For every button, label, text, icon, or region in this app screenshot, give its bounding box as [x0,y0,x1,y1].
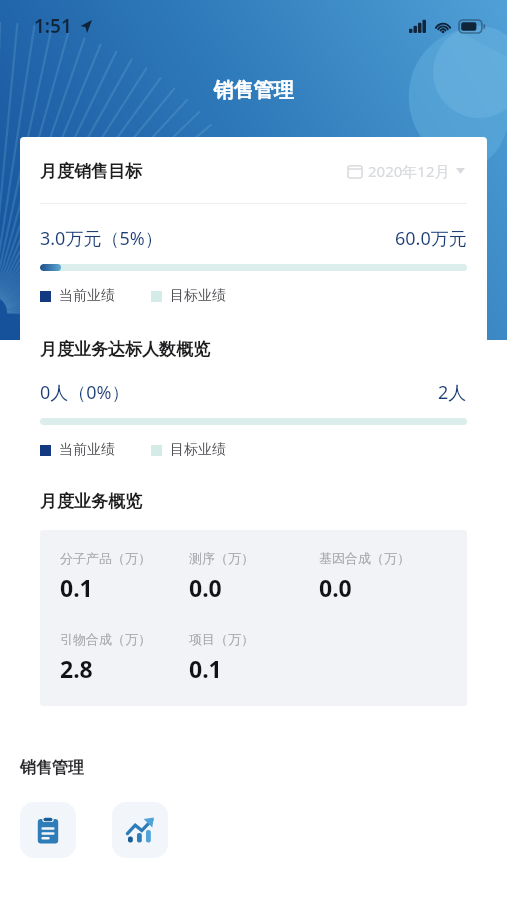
button[interactable]: 销售统计 [112,802,168,858]
staticText: 引物合成（万） [60,631,151,647]
staticText: 3.0万元（5%） [40,226,163,251]
staticText: 0.0 [319,572,352,603]
button[interactable]: 销售订单 [20,802,76,858]
staticText: 2人 [438,380,467,405]
staticText: 0.0 [189,572,222,603]
staticText: 当前业绩 [59,287,115,305]
staticText: 销售管理 [20,758,84,778]
staticText: 目标业绩 [170,441,226,459]
staticText: 0.1 [60,572,93,603]
staticText: 1:51 [34,13,72,39]
staticText: 月度业务概览 [40,491,142,512]
staticText: 分子产品（万） [60,550,151,566]
staticText: 基因合成（万） [319,550,410,566]
staticText: 月度业务达标人数概览 [40,339,210,360]
staticText: 60.0万元 [395,226,467,251]
button[interactable]: 2020年12月 [346,157,467,185]
staticText: 销售管理 [0,78,507,103]
staticText: 2020年12月 [368,161,450,181]
staticText: 0人（0%） [40,380,130,405]
staticText: 当前业绩 [59,441,115,459]
staticText: 2.8 [60,653,93,684]
staticText: 月度销售目标 [40,161,142,182]
staticText: 0.1 [189,653,222,684]
staticText: 项目（万） [189,631,254,647]
staticText: 测序（万） [189,550,254,566]
staticText: 目标业绩 [170,287,226,305]
